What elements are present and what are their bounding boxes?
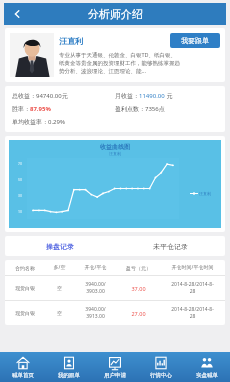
staticText: 30 — [18, 193, 23, 198]
button[interactable]: 行情中心 — [138, 352, 184, 382]
staticText: 我的跟单 — [58, 372, 80, 379]
staticText: 94740.00元 — [36, 92, 68, 100]
staticText: 实盘喊单 — [196, 372, 218, 379]
staticText: 行情中心 — [150, 372, 172, 379]
staticText: 3940.00/ 3903.00 — [74, 281, 117, 295]
staticText: 喊单首页 — [12, 372, 34, 379]
staticText: 现货白银 — [5, 285, 45, 291]
staticText: 月收益： — [115, 92, 139, 100]
staticText: 分析师介绍 — [88, 7, 143, 21]
staticText: 2014-8-28/2014-8- 28 — [160, 281, 225, 295]
staticText: 3940.00/ 3913.00 — [74, 306, 117, 320]
button[interactable]: 喊单首页 — [0, 352, 46, 382]
staticText: 盈亏（元） — [117, 265, 160, 271]
staticText: 多/空 — [45, 264, 74, 271]
staticText: 盈利点数：7356点 — [115, 105, 165, 113]
staticText: 50 — [18, 177, 23, 182]
staticText: 收益曲线图 — [9, 143, 221, 151]
staticText: 70 — [18, 161, 23, 166]
staticText: 单均收益率：0.29% — [12, 118, 65, 126]
button[interactable]: 用户申请 — [92, 352, 138, 382]
button[interactable]: 操盘记录 — [5, 236, 115, 256]
button[interactable]: 未平仓记录 — [115, 236, 225, 256]
staticText: 27.00 — [117, 310, 160, 317]
staticText: 现货白银 — [5, 310, 45, 316]
button[interactable]: 现货白银 — [5, 276, 225, 300]
staticText: 开仓/平仓 — [74, 264, 117, 271]
staticText: 空 — [45, 285, 74, 291]
staticText: 专业从事于天通银、伦敦金、白银TD、纸白银、 纸黄金等贵金属的投资理财工作，能够… — [59, 51, 180, 75]
staticText: 开仓时间/平仓时间 — [160, 264, 225, 271]
staticText: 合约名称 — [5, 265, 45, 271]
staticText: 2014-8-28/2014-8- 28 — [160, 306, 225, 320]
staticText: 汪直利 — [199, 191, 211, 196]
staticText: 空 — [45, 310, 74, 316]
staticText: 未平仓记录 — [153, 242, 188, 251]
staticText: 汪直利 — [59, 36, 83, 46]
staticText: 87.95% — [30, 105, 51, 113]
staticText: 10 — [18, 209, 23, 214]
button[interactable]: 现货白银 — [5, 301, 225, 325]
staticText: 总收益： — [12, 92, 36, 100]
staticText: 用户申请 — [104, 372, 126, 379]
staticText: 我要跟单 — [181, 36, 209, 45]
button[interactable]: 实盘喊单 — [184, 352, 230, 382]
staticText: 11490.00 — [139, 92, 165, 100]
staticText: 汪直利 — [9, 151, 221, 156]
button[interactable]: 我要跟单 — [170, 33, 220, 48]
staticText: 操盘记录 — [46, 242, 74, 251]
staticText: 37.00 — [117, 285, 160, 292]
button[interactable]: 我的跟单 — [46, 352, 92, 382]
staticText: 胜率： — [12, 105, 30, 113]
staticText: 元 — [165, 92, 173, 100]
button[interactable]: Back — [4, 3, 30, 25]
